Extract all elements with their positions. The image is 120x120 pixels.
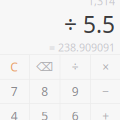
button[interactable]: Plus <box>91 104 120 120</box>
staticText: × <box>102 59 109 75</box>
button[interactable]: Multiply <box>91 55 120 79</box>
button[interactable]: Eight <box>30 79 60 103</box>
staticText: 7 <box>11 83 18 99</box>
staticText: 1,314 <box>88 0 115 8</box>
staticText: 9 <box>72 83 79 99</box>
staticText: 5 <box>41 108 48 120</box>
button[interactable]: Nine <box>60 79 90 103</box>
staticText: 8 <box>41 83 48 99</box>
button[interactable]: Minus <box>91 79 120 103</box>
staticText: 4 <box>11 108 18 120</box>
button[interactable]: Four <box>0 104 29 120</box>
staticText: = 238.909091 <box>49 40 115 54</box>
button[interactable]: Delete <box>30 55 60 79</box>
staticText: 6 <box>72 108 79 120</box>
staticText: ÷ 5.5 <box>64 9 115 39</box>
button[interactable]: Divide <box>60 55 90 79</box>
staticText: ⌫ <box>36 60 53 74</box>
button[interactable]: Five <box>30 104 60 120</box>
staticText: − <box>102 83 109 99</box>
button[interactable]: Clear <box>0 55 29 79</box>
staticText: C <box>10 59 18 75</box>
button[interactable]: Seven <box>0 79 29 103</box>
button[interactable]: Six <box>60 104 90 120</box>
staticText: ÷ <box>72 59 79 75</box>
staticText: + <box>102 108 109 120</box>
